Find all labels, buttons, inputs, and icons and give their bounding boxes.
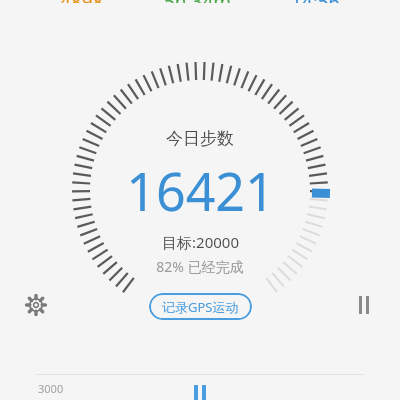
staticText: 3000: [38, 381, 64, 396]
staticText: 14:56: [291, 0, 340, 3]
staticText: 目标:20000: [162, 232, 239, 252]
staticText: 记录GPS运动: [162, 298, 239, 316]
button[interactable]: Settings: [18, 287, 54, 323]
button[interactable]: 记录GPS运动: [149, 293, 252, 320]
staticText: 16421: [126, 155, 275, 226]
button[interactable]: Pause: [346, 287, 382, 323]
staticText: 4898: [60, 0, 104, 3]
staticText: 今日步数: [166, 128, 234, 149]
staticText: 82% 已经完成: [156, 257, 244, 276]
staticText: 5h 34m: [164, 0, 232, 3]
